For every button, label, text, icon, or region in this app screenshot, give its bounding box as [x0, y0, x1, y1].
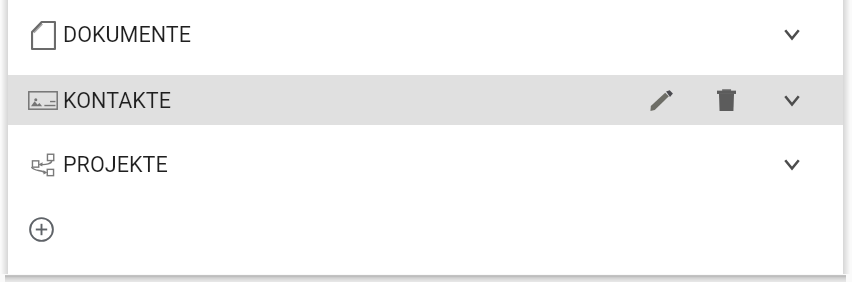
staticText: KONTAKTE — [63, 88, 172, 113]
staticText: PROJEKTE — [63, 152, 168, 177]
button[interactable]: Delete — [694, 75, 759, 125]
button[interactable]: PROJEKTE — [8, 139, 843, 189]
button[interactable]: Expand — [759, 139, 824, 189]
staticText: DOKUMENTE — [63, 22, 191, 47]
button[interactable]: Expand — [759, 9, 824, 59]
button[interactable]: KONTAKTE — [8, 75, 843, 125]
button[interactable]: Add — [8, 204, 63, 254]
button[interactable]: Edit — [629, 75, 694, 125]
button[interactable]: Expand — [759, 75, 824, 125]
button[interactable]: DOKUMENTE — [8, 9, 843, 59]
